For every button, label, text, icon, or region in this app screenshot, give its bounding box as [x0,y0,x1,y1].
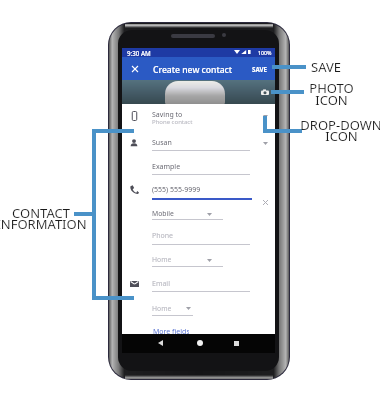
staticText: More fields [153,327,189,335]
staticText: Home [152,255,172,264]
button[interactable]: Drop-down [204,211,214,218]
staticText: INFORMATION [0,215,87,233]
staticText: 100% [258,49,272,56]
button[interactable]: Drop-down [260,140,270,147]
button[interactable]: Drop-down [183,305,193,312]
staticText: (555) 555-9999 [152,185,201,195]
button[interactable]: Drop-down [204,257,214,264]
staticText: Saving to [152,110,183,120]
staticText: CONTACT [12,204,70,222]
button[interactable]: Back [154,337,166,349]
button[interactable]: More fields [153,327,189,335]
button[interactable]: Home [194,337,206,349]
staticText: Susan [152,138,172,148]
staticText: Email [152,279,170,289]
button[interactable]: Close [129,63,140,74]
staticText: ICON [325,127,358,145]
button[interactable]: Recents [230,337,242,349]
staticText: 9:30 AM [127,49,151,57]
staticText: SAVE [311,58,341,76]
staticText: PHOTO [309,79,354,97]
staticText: Home [152,304,172,313]
button[interactable]: Add photo [259,87,270,98]
staticText: Example [152,162,181,172]
staticText: Phone [152,231,174,241]
button[interactable]: SAVE [248,62,270,75]
button[interactable]: Drop-down [260,113,270,120]
staticText: Create new contact [153,64,233,76]
staticText: SAVE [252,65,267,73]
button[interactable]: Clear [261,198,270,207]
staticText: DROP-DOWN [300,116,380,134]
staticText: ICON [315,91,348,109]
staticText: Mobile [152,209,174,218]
staticText: Phone contact [152,118,193,126]
